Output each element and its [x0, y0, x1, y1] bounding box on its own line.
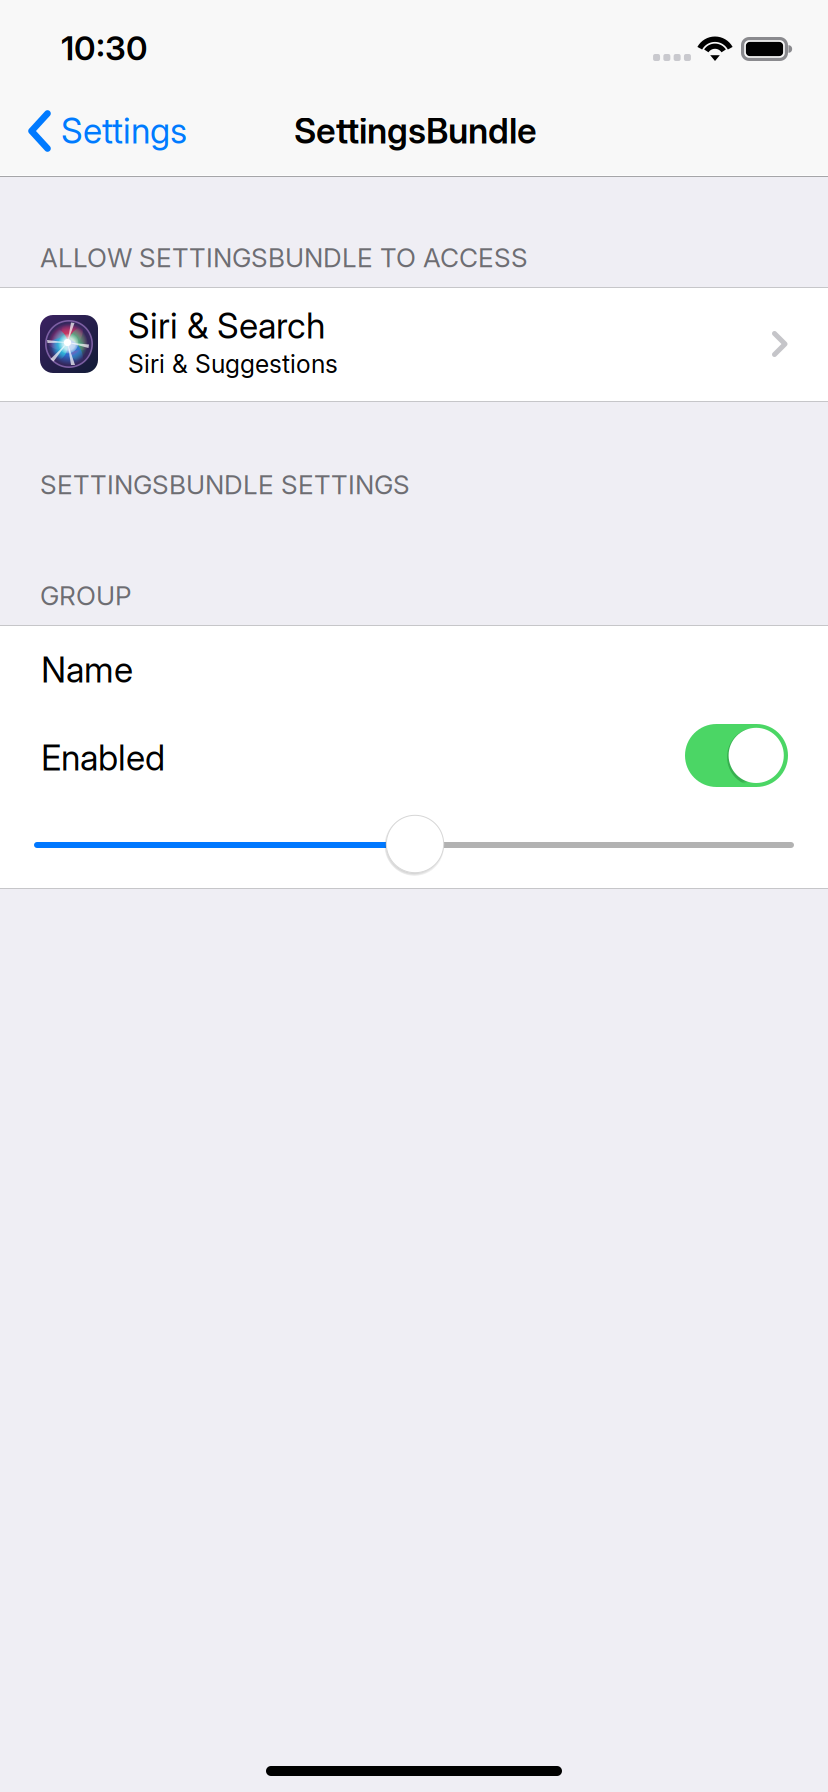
- staticText: Siri & Search: [128, 305, 325, 347]
- staticText: SettingsBundle: [294, 110, 537, 152]
- button[interactable]: Enabled: [0, 712, 828, 800]
- staticText: Siri & Suggestions: [128, 349, 338, 379]
- button[interactable]: Siri & Search: [0, 288, 828, 401]
- staticText: Settings: [61, 110, 187, 152]
- staticText: SETTINGSBUNDLE SETTINGS: [40, 469, 410, 501]
- staticText: Enabled: [41, 737, 165, 779]
- staticText: Name: [41, 649, 133, 691]
- button[interactable]: Name: [0, 626, 828, 712]
- button[interactable]: Settings: [18, 92, 210, 176]
- button[interactable]: Value: [0, 800, 828, 888]
- staticText: 10:30: [61, 28, 148, 68]
- staticText: GROUP: [40, 580, 131, 612]
- staticText: ALLOW SETTINGSBUNDLE TO ACCESS: [40, 242, 528, 274]
